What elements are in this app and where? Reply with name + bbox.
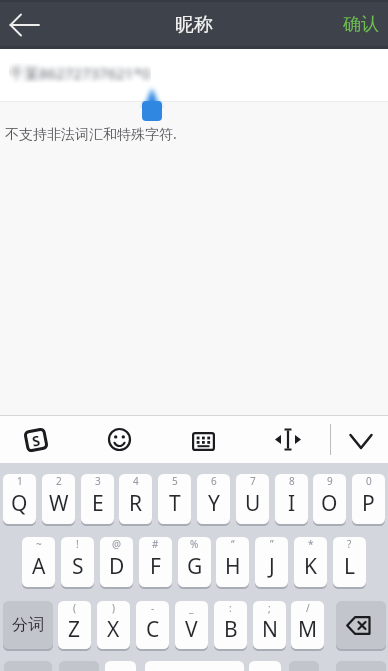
- staticText: #: [152, 537, 159, 551]
- button[interactable]: :: [214, 601, 247, 649]
- button[interactable]: (: [58, 601, 91, 649]
- button[interactable]: _: [175, 601, 208, 649]
- button[interactable]: *: [294, 537, 327, 587]
- staticText: I: [288, 489, 296, 518]
- button[interactable]: 4: [119, 474, 152, 524]
- staticText: *: [308, 537, 314, 551]
- staticText: A: [32, 552, 46, 581]
- button[interactable]: S: [24, 428, 47, 451]
- button[interactable]: ?: [333, 537, 366, 587]
- button[interactable]: [336, 601, 386, 649]
- button[interactable]: 0: [352, 474, 385, 524]
- staticText: Z: [68, 615, 81, 644]
- staticText: X: [107, 615, 120, 644]
- button[interactable]: 9: [313, 474, 346, 524]
- staticText: M: [298, 615, 318, 644]
- staticText: /: [306, 601, 310, 615]
- staticText: 6: [211, 474, 217, 488]
- staticText: K: [304, 552, 317, 581]
- staticText: 不支持非法词汇和特殊字符.: [5, 124, 177, 143]
- button[interactable]: -: [136, 601, 169, 649]
- staticText: (: [73, 601, 76, 615]
- button[interactable]: [0, 1, 48, 49]
- staticText: 确认: [343, 13, 379, 36]
- staticText: ~: [36, 537, 42, 551]
- staticText: 7: [250, 474, 256, 488]
- button[interactable]: ~: [22, 537, 55, 587]
- staticText: _: [189, 601, 194, 615]
- staticText: V: [185, 615, 198, 644]
- button[interactable]: #: [139, 537, 172, 587]
- button[interactable]: [145, 661, 244, 671]
- staticText: R: [129, 489, 143, 518]
- button[interactable]: [249, 661, 281, 671]
- staticText: ”: [270, 537, 274, 551]
- staticText: %: [190, 537, 199, 551]
- button[interactable]: [192, 432, 215, 451]
- staticText: 0: [366, 474, 372, 488]
- staticText: !: [76, 537, 79, 551]
- button[interactable]: 1: [3, 474, 36, 524]
- staticText: 昵称: [175, 13, 213, 37]
- staticText: B: [224, 615, 238, 644]
- staticText: 分词: [12, 615, 44, 635]
- button[interactable]: 分词: [3, 601, 53, 649]
- button[interactable]: @: [100, 537, 133, 587]
- staticText: 1: [17, 474, 23, 488]
- button[interactable]: 7: [236, 474, 269, 524]
- staticText: W: [49, 489, 69, 518]
- staticText: @: [112, 537, 121, 551]
- staticText: T: [169, 489, 181, 518]
- staticText: ): [112, 601, 115, 615]
- button[interactable]: %: [178, 537, 211, 587]
- button[interactable]: 千某86272737621*0: [0, 49, 388, 101]
- staticText: ?: [347, 537, 352, 551]
- staticText: H: [225, 552, 241, 581]
- button[interactable]: ”: [255, 537, 288, 587]
- button[interactable]: [275, 427, 301, 452]
- staticText: 9: [327, 474, 333, 488]
- button[interactable]: 2: [42, 474, 75, 524]
- staticText: 4: [133, 474, 139, 488]
- button[interactable]: [105, 661, 136, 671]
- staticText: :: [229, 601, 232, 615]
- staticText: C: [146, 615, 160, 644]
- staticText: 2: [56, 474, 62, 488]
- button[interactable]: ;: [253, 601, 286, 649]
- staticText: “: [231, 537, 235, 551]
- button[interactable]: [107, 427, 132, 452]
- button[interactable]: [289, 661, 319, 671]
- button[interactable]: 8: [275, 474, 308, 524]
- staticText: 5: [172, 474, 178, 488]
- button[interactable]: 5: [158, 474, 191, 524]
- button[interactable]: /: [291, 601, 324, 649]
- staticText: S: [72, 552, 84, 581]
- staticText: 千某86272737621*0: [9, 63, 151, 83]
- button[interactable]: ): [97, 601, 130, 649]
- staticText: 8: [289, 474, 295, 488]
- staticText: D: [109, 552, 125, 581]
- staticText: S: [30, 430, 42, 451]
- staticText: -: [151, 601, 155, 615]
- staticText: E: [92, 489, 104, 518]
- button[interactable]: !: [61, 537, 94, 587]
- staticText: F: [150, 552, 161, 581]
- staticText: G: [187, 552, 203, 581]
- staticText: L: [344, 552, 356, 581]
- staticText: Y: [208, 489, 220, 518]
- staticText: P: [362, 489, 375, 518]
- staticText: N: [262, 615, 278, 644]
- button[interactable]: 确认: [334, 1, 388, 48]
- button[interactable]: [344, 429, 378, 454]
- button[interactable]: 3: [81, 474, 114, 524]
- staticText: U: [245, 489, 261, 518]
- button[interactable]: “: [216, 537, 249, 587]
- staticText: 3: [95, 474, 101, 488]
- button[interactable]: 6: [197, 474, 230, 524]
- staticText: Q: [11, 489, 28, 518]
- staticText: ;: [268, 601, 271, 615]
- staticText: J: [269, 552, 275, 581]
